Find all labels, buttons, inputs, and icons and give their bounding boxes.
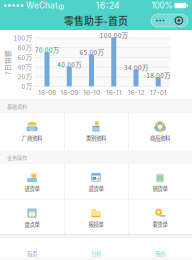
button[interactable]: 要货单 [128,200,192,234]
staticText: 60万 [17,52,32,62]
staticText: 退货单 [88,185,103,192]
staticText: 16:24 [96,0,120,11]
button[interactable]: 我的 [128,238,192,260]
staticText: 34.00万 [124,63,148,72]
staticText: 商品资料 [150,134,170,142]
staticText: 40.00万 [57,60,81,69]
staticText: 首页 [27,249,37,257]
staticText: 盘点单 [24,220,39,228]
staticText: 业务操作 [7,153,27,161]
staticText: 7日销额 [0,58,20,67]
staticText: 100.00万 [100,31,128,40]
staticText: 分析 [91,249,101,257]
staticText: 类别资料 [86,134,106,142]
button[interactable]: 销货单 [128,164,192,199]
button[interactable]: More [151,14,188,27]
staticText: WeChat [26,0,58,10]
button[interactable]: 盘点单 [0,200,64,234]
button[interactable]: 厂商资料 [0,113,64,150]
button[interactable]: 报损单 [64,200,128,234]
staticText: 报损单 [88,220,103,228]
staticText: 要货单 [152,220,167,228]
staticText: 基础资料 [7,102,27,110]
button[interactable]: 首页 [0,238,64,260]
staticText: 100% [151,0,172,10]
staticText: 16-09 [60,88,78,97]
button[interactable]: 分析 [64,238,128,260]
staticText: 80万 [17,42,32,52]
staticText: 进货单 [24,185,39,192]
button[interactable]: 退货单 [64,164,128,199]
button[interactable]: 类别资料 [64,113,128,150]
staticText: 65.00万 [79,48,103,57]
staticText: 16-11 [106,88,122,97]
button[interactable]: 进货单 [0,164,64,199]
staticText: 100万 [13,33,32,42]
staticText: 厂商资料 [22,134,42,142]
staticText: 销货单 [152,185,167,192]
staticText: 18.00万 [146,70,170,80]
staticText: 我的 [155,249,165,257]
staticText: 40万 [17,62,32,72]
staticText: 17-01 [150,88,167,97]
staticText: 20万 [17,72,32,81]
staticText: 16-08 [38,88,56,97]
staticText: 70.00万 [35,45,59,54]
staticText: 零售助手-首页 [64,13,128,28]
staticText: 16-10 [83,88,100,97]
staticText: 0万 [21,81,32,91]
button[interactable]: 商品资料 [128,113,192,150]
staticText: 16-12 [127,88,144,97]
